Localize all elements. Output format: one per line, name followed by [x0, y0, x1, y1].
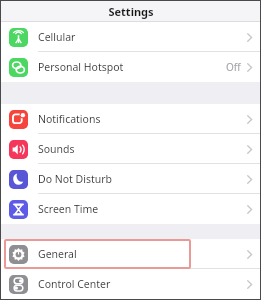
staticText: Personal Hotspot [38, 60, 124, 74]
staticText: General [38, 247, 77, 261]
button[interactable]: Control Center [0, 269, 261, 299]
button[interactable]: Notifications [0, 104, 261, 134]
button[interactable]: Screen Time [0, 194, 261, 224]
staticText: Notifications [38, 112, 101, 126]
button[interactable]: Do Not Disturb [0, 164, 261, 194]
staticText: Do Not Disturb [38, 172, 113, 186]
staticText: Off [226, 60, 241, 74]
staticText: Settings [108, 4, 154, 19]
button[interactable]: Sounds [0, 134, 261, 164]
button[interactable]: General [0, 239, 261, 269]
staticText: Cellular [38, 30, 76, 44]
button[interactable]: Cellular [0, 22, 261, 52]
button[interactable]: Personal Hotspot [0, 52, 261, 82]
staticText: Sounds [38, 142, 75, 156]
staticText: Screen Time [38, 202, 99, 216]
staticText: Control Center [38, 277, 111, 291]
